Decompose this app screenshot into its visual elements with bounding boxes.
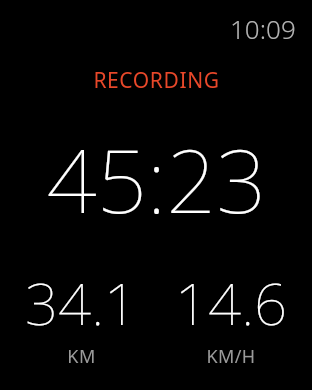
staticText: 14.6 [175, 263, 287, 342]
staticText: KM [67, 344, 96, 369]
staticText: KM/H [206, 344, 256, 369]
staticText: 10:09 [230, 11, 296, 46]
staticText: RECORDING [93, 66, 220, 95]
button[interactable]: 14.6 [156, 263, 306, 369]
button[interactable]: 45:23 [0, 119, 312, 239]
button[interactable]: 34.1 [6, 263, 156, 369]
button[interactable]: RECORDING [85, 64, 228, 97]
staticText: 34.1 [25, 263, 137, 342]
staticText: 45:23 [46, 119, 267, 239]
